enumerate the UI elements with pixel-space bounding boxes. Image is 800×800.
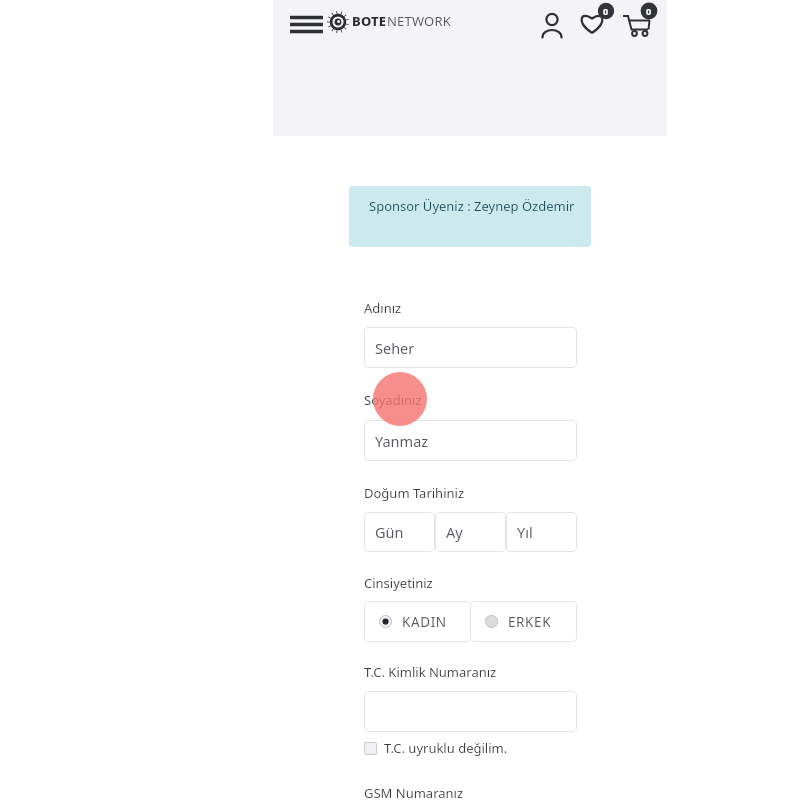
staticText: 0 [603,5,609,17]
staticText: GSM Numaranız [364,784,464,800]
button[interactable]: Ay [435,512,506,552]
staticText: T.C. uyruklu değilim. [384,739,508,757]
button[interactable] [364,691,577,732]
staticText: Sponsor Üyeniz : Zeynep Özdemir [369,197,575,215]
staticText: Seher [375,338,415,358]
staticText: ERKEK [508,613,552,631]
staticText: NETWORK [387,12,451,30]
staticText: BOTE [352,12,387,30]
button[interactable]: ERKEK [470,601,577,642]
staticText: Ay [446,522,463,542]
button[interactable]: T.C. uyruklu değilim. [364,738,508,758]
staticText: Yıl [517,522,533,542]
button[interactable]: Gün [364,512,435,552]
button[interactable]: BOTE [325,6,451,42]
button[interactable]: Cart [619,2,661,44]
staticText: Adınız [364,299,402,317]
staticText: Soyadınız [364,391,422,409]
staticText: Gün [375,522,404,542]
staticText: 0 [646,5,652,17]
button[interactable]: Yıl [506,512,577,552]
button[interactable]: Sponsor Üyeniz : Zeynep Özdemir [349,186,591,247]
button[interactable]: KADIN [364,601,471,642]
button[interactable]: Wishlist [576,2,618,44]
button[interactable]: Seher [364,327,577,368]
staticText: T.C. Kimlik Numaranız [364,663,497,681]
staticText: Doğum Tarihiniz [364,484,465,502]
staticText: KADIN [402,613,447,631]
button[interactable]: Account [533,5,571,45]
button[interactable]: Yanmaz [364,420,577,461]
staticText: Cinsiyetiniz [364,574,433,592]
button[interactable]: Menu [285,8,325,48]
staticText: Yanmaz [375,431,429,451]
